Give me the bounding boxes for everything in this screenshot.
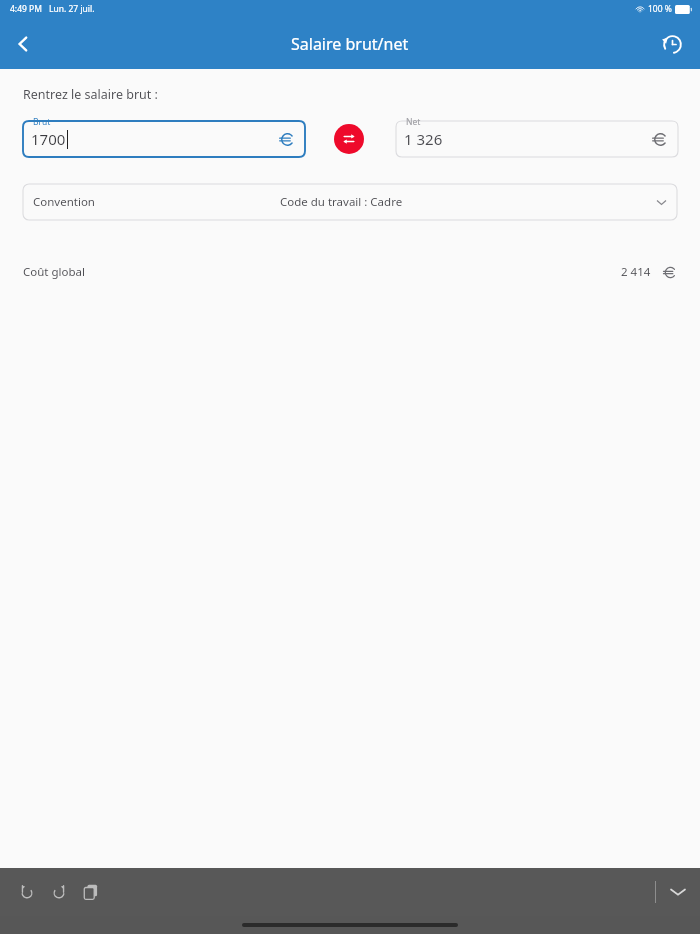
button[interactable]: Convention (23, 184, 677, 220)
staticText: 2 414 (621, 264, 651, 280)
button[interactable]: Net (396, 121, 678, 157)
button[interactable]: History (652, 24, 692, 64)
staticText: 1700 (31, 129, 66, 149)
staticText: Rentrez le salaire brut : (23, 86, 158, 103)
button[interactable]: Undo (12, 877, 42, 907)
staticText: 1 326 (404, 129, 443, 149)
staticText: 4:49 PM (10, 3, 42, 15)
staticText: Brut (33, 116, 51, 128)
staticText: Net (406, 116, 421, 128)
button[interactable]: Brut (23, 121, 305, 157)
button[interactable]: Swap brut and net (334, 124, 364, 154)
button[interactable]: Hide keyboard (656, 868, 700, 916)
staticText: Convention (33, 194, 95, 210)
staticText: 100 % (648, 3, 672, 15)
button[interactable]: Redo (44, 877, 74, 907)
button[interactable]: Paste (76, 877, 106, 907)
staticText: Lun. 27 juil. (49, 3, 95, 15)
button[interactable]: Back (0, 21, 46, 67)
staticText: Salaire brut/net (291, 33, 409, 55)
staticText: Code du travail : Cadre (280, 194, 403, 210)
staticText: Coût global (23, 264, 85, 280)
